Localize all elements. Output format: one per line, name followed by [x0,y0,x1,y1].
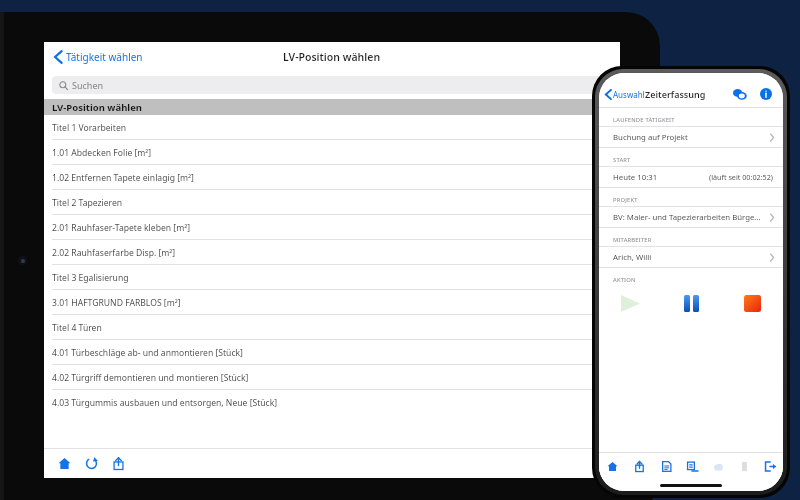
button[interactable]: Titel 4 Türen [44,315,620,340]
button[interactable]: Auswahl [603,87,647,102]
button[interactable]: Share [626,453,653,479]
staticText: Suchen [72,79,104,91]
staticText: Titel 3 Egalisierung [52,272,129,284]
staticText: LAUFENDE TÄTIGKEIT [613,116,675,124]
staticText: 4.03 Türgummis ausbauen und entsorgen, N… [52,397,278,409]
staticText: 3.01 HAFTGRUND FARBLOS [m²] [52,297,181,309]
button[interactable]: Info [757,85,775,103]
button[interactable]: Cloud [705,453,731,479]
button[interactable]: Tätigkeit wählen [52,46,145,68]
staticText: START [613,156,631,164]
staticText: Tätigkeit wählen [66,50,143,64]
button[interactable]: 3.01 HAFTGRUND FARBLOS [m²] [44,290,620,315]
staticText: LV-Position wählen [52,101,143,114]
staticText: Auswahl [613,89,645,100]
staticText: 1.01 Abdecken Folie [m²] [52,147,152,159]
button[interactable]: Chat [731,85,749,103]
button[interactable]: BV: Maler- und Tapezierarbeiten Bürgerha… [599,206,783,228]
button[interactable]: Arich, Willi [599,246,783,268]
staticText: Titel 2 Tapezieren [52,197,123,209]
staticText: 2.02 Rauhfaserfarbe Disp. [m²] [52,247,176,259]
staticText: 4.01 Türbeschläge ab- und anmontieren [S… [52,347,243,359]
staticText: (läuft seit 00:02:52) [709,172,773,182]
button[interactable]: Heute 10:31 [599,166,783,188]
button[interactable]: Home [599,453,626,479]
staticText: Titel 1 Vorarbeiten [52,122,127,134]
staticText: 1.02 Entfernen Tapete einlagig [m²] [52,172,194,184]
staticText: MITARBEITER [613,236,652,244]
button[interactable]: Titel 2 Tapezieren [44,190,620,215]
button[interactable]: Titel 1 Vorarbeiten [44,115,620,140]
button[interactable]: Documents [653,453,679,479]
button[interactable]: Share [110,455,126,471]
staticText: Heute 10:31 [613,172,658,183]
button[interactable]: Buchung auf Projekt [599,126,783,148]
button[interactable]: Start [599,286,661,320]
button[interactable]: Pause [661,286,722,320]
button[interactable]: 1.02 Entfernen Tapete einlagig [m²] [44,165,620,190]
button[interactable]: 4.02 Türgriff demontieren und montieren … [44,365,620,390]
staticText: BV: Maler- und Tapezierarbeiten Bürgerha… [613,212,763,223]
staticText: AKTION [613,276,636,284]
button[interactable]: Home [56,455,72,471]
button[interactable]: Logout [757,453,783,479]
button[interactable]: Titel 3 Egalisierung [44,265,620,290]
button[interactable]: Refresh [83,455,99,471]
staticText: 2.01 Rauhfaser-Tapete kleben [m²] [52,222,191,234]
button[interactable]: Files [731,453,757,479]
staticText: Arich, Willi [613,252,652,263]
button[interactable]: 4.01 Türbeschläge ab- und anmontieren [S… [44,340,620,365]
staticText: Buchung auf Projekt [613,132,688,143]
button[interactable]: 2.02 Rauhfaserfarbe Disp. [m²] [44,240,620,265]
button[interactable]: Time tracking [679,453,705,479]
button[interactable]: 1.01 Abdecken Folie [m²] [44,140,620,165]
staticText: 4.02 Türgriff demontieren und montieren … [52,372,249,384]
button[interactable]: 2.01 Rauhfaser-Tapete kleben [m²] [44,215,620,240]
staticText: Titel 4 Türen [52,322,102,334]
staticText: Zeiterfassung [645,88,706,100]
staticText: LV-Position wählen [283,50,381,64]
button[interactable]: Suchen [52,76,612,94]
button[interactable]: Stop [722,286,783,320]
button[interactable]: 4.03 Türgummis ausbauen und entsorgen, N… [44,390,620,415]
staticText: PROJEKT [613,196,638,204]
